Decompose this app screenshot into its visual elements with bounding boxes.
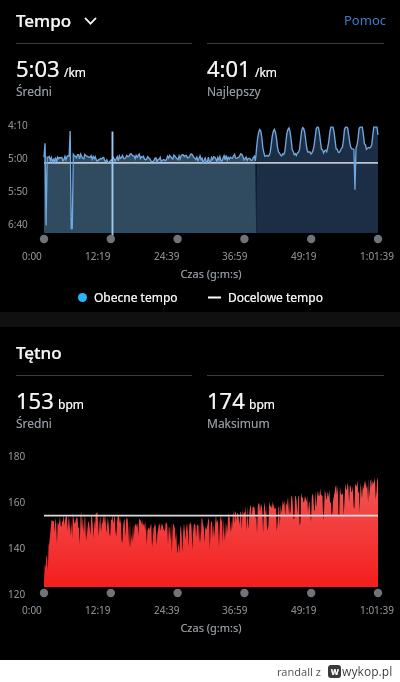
staticText: wykop.pl bbox=[342, 663, 393, 679]
staticText: Maksimum bbox=[207, 415, 270, 431]
staticText: Tempo bbox=[16, 9, 72, 32]
staticText: 36:59 bbox=[222, 249, 248, 263]
staticText: Najlepszy bbox=[207, 83, 261, 99]
staticText: 174 bbox=[207, 385, 245, 415]
staticText: 1:01:39 bbox=[360, 249, 394, 263]
staticText: 1:01:39 bbox=[360, 603, 394, 617]
staticText: 120 bbox=[8, 587, 26, 600]
staticText: W bbox=[331, 666, 339, 677]
button[interactable]: Pomoc bbox=[330, 7, 400, 33]
staticText: bpm bbox=[58, 396, 84, 412]
staticText: 6:40 bbox=[8, 217, 28, 231]
staticText: 160 bbox=[8, 495, 26, 509]
staticText: 180 bbox=[8, 449, 26, 463]
staticText: Średni bbox=[16, 83, 52, 99]
staticText: Pomoc bbox=[344, 11, 386, 29]
staticText: 153 bbox=[16, 385, 54, 415]
staticText: 12:19 bbox=[85, 249, 111, 263]
staticText: Obecne tempo bbox=[94, 289, 178, 305]
staticText: 5:00 bbox=[8, 151, 28, 165]
staticText: 140 bbox=[8, 541, 26, 555]
staticText: randall z bbox=[277, 664, 321, 679]
staticText: Docelowe tempo bbox=[228, 289, 323, 305]
staticText: Czas (g:m:s) bbox=[44, 266, 378, 281]
staticText: Czas (g:m:s) bbox=[44, 620, 378, 635]
staticText: 49:19 bbox=[291, 603, 317, 617]
staticText: /km bbox=[64, 64, 87, 80]
staticText: 0:00 bbox=[22, 603, 42, 617]
other: Expand bbox=[83, 13, 98, 28]
button[interactable]: Tempo bbox=[0, 9, 106, 32]
staticText: Średni bbox=[16, 415, 52, 431]
staticText: 4:01 bbox=[207, 53, 251, 83]
staticText: 49:19 bbox=[291, 249, 317, 263]
staticText: 24:39 bbox=[154, 603, 180, 617]
staticText: 5:03 bbox=[16, 53, 60, 83]
staticText: 12:19 bbox=[85, 603, 111, 617]
staticText: 0:00 bbox=[22, 249, 42, 263]
staticText: 24:39 bbox=[154, 249, 180, 263]
staticText: 4:10 bbox=[8, 118, 28, 132]
staticText: 36:59 bbox=[222, 603, 248, 617]
staticText: 5:50 bbox=[8, 184, 28, 198]
staticText: bpm bbox=[249, 396, 275, 412]
staticText: /km bbox=[255, 64, 278, 80]
staticText: Tętno bbox=[16, 341, 62, 364]
